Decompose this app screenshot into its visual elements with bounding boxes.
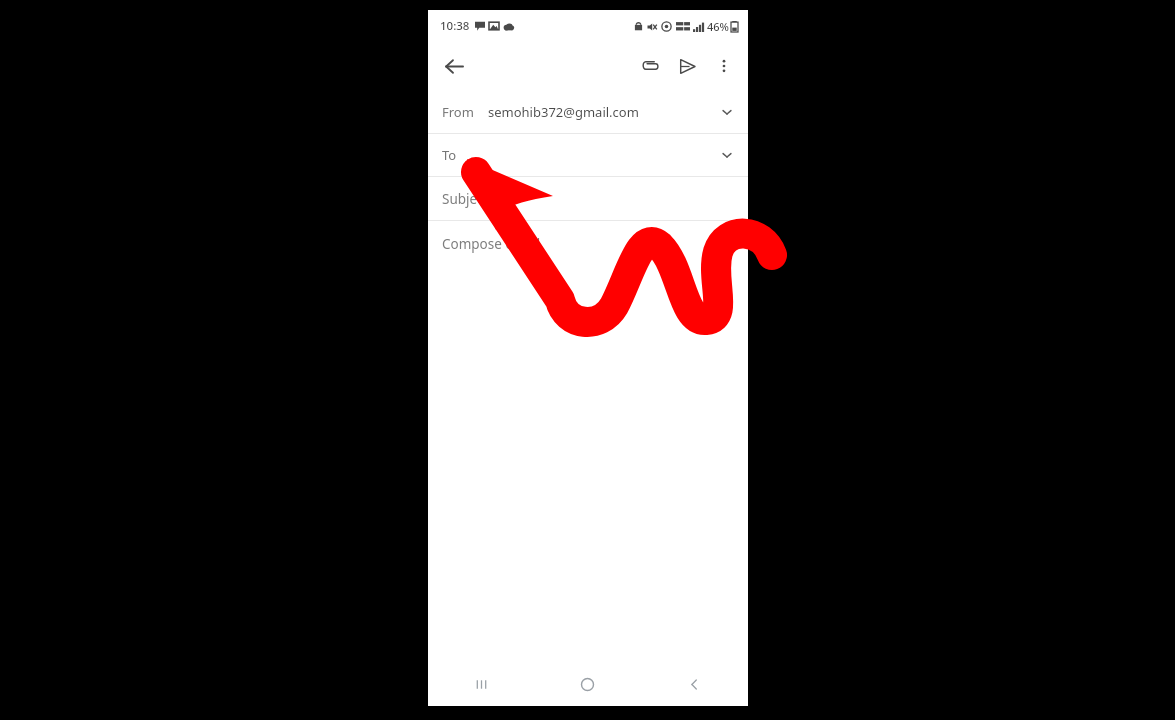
button[interactable]: Compose email [428,221,748,267]
button[interactable]: From [428,90,748,133]
staticText: Compose email [442,235,541,253]
staticText: From [442,103,474,121]
button[interactable]: To [428,134,748,176]
staticText: Subject [442,190,489,208]
button[interactable]: Subject [428,177,748,220]
button[interactable]: Home [534,662,641,706]
button[interactable]: Back [436,48,472,84]
button[interactable]: Attach file [632,48,668,84]
button[interactable]: More options [706,48,742,84]
staticText: semohib372@gmail.com [488,103,639,121]
staticText: 46% [707,19,729,34]
staticText: To [442,146,457,164]
button[interactable]: Send [669,48,705,84]
button[interactable]: Recent apps [428,662,534,706]
staticText: 10:38 [440,18,470,34]
button[interactable]: Back [641,662,748,706]
